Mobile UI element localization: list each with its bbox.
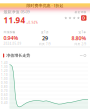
staticText: 0.90 <box>1 81 8 85</box>
staticText: 限时费率优惠 · 1折起 <box>26 3 63 8</box>
button[interactable]: 限时费率优惠 · 1折起 <box>0 3 90 8</box>
staticText: 净值增长走势 <box>6 53 30 58</box>
staticText: 29 <box>42 35 48 42</box>
staticText: 8.80% <box>71 35 86 42</box>
staticText: 1.30 <box>1 65 8 69</box>
staticText: 2024-05-09 <box>3 42 21 46</box>
button[interactable]: 图表选项 <box>79 53 87 58</box>
staticText: 0.60 <box>1 93 8 97</box>
staticText: 1.40 <box>1 61 8 65</box>
staticText: +0.94% <box>26 21 37 24</box>
staticText: 0.40 <box>1 101 8 105</box>
staticText: 基金评级 <box>74 10 86 14</box>
staticText: 0.80 <box>1 85 8 89</box>
staticText: 近1月 <box>41 30 49 34</box>
staticText: 同类 7/9 <box>39 42 51 46</box>
staticText: 0.50 <box>1 97 8 101</box>
staticText: D <box>82 15 85 21</box>
staticText: 1.20 <box>1 69 8 73</box>
staticText: 日涨跌幅 <box>3 30 15 34</box>
staticText: 最新净值 05-09 <box>3 9 29 14</box>
staticText: 1.10 <box>1 73 8 77</box>
staticText: 同类 2/9 <box>74 42 86 46</box>
staticText: 11.94 <box>3 15 25 25</box>
staticText: 0.94% <box>3 34 18 41</box>
button[interactable]: 评级等级 <box>81 15 86 21</box>
staticText: 1.00 <box>1 77 8 81</box>
staticText: 近1年 <box>78 30 86 34</box>
staticText: 0.70 <box>1 89 8 93</box>
